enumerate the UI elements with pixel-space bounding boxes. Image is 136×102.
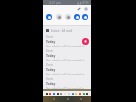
staticText: Today <box>46 54 56 58</box>
button[interactable]: Home <box>64 96 71 102</box>
staticText: Hey, what's up? I just wanted to check i… <box>46 87 91 89</box>
staticText: Hey, what's up? I just wanted to check i… <box>46 45 91 47</box>
button[interactable]: App <box>53 93 55 95</box>
button[interactable]: Kevin <box>43 33 91 47</box>
button[interactable]: Edit <box>76 6 82 12</box>
button[interactable]: App <box>49 93 51 95</box>
staticText: Kevin <box>46 49 54 53</box>
staticText: Kevin <box>46 35 54 39</box>
button[interactable]: Video <box>65 14 71 20</box>
button[interactable]: App <box>46 93 48 95</box>
button[interactable]: App <box>79 93 81 95</box>
button[interactable]: Message <box>74 14 80 20</box>
staticText: Kevin <box>46 77 54 81</box>
button[interactable]: App <box>72 93 74 95</box>
staticText: Today <box>46 82 56 86</box>
button[interactable]: Kevin <box>43 47 91 61</box>
staticText: Hey, what's up? I just wanted to check i… <box>46 73 91 75</box>
staticText: Hey, what's up? I just wanted to check i… <box>46 59 91 61</box>
staticText: ▲ ▮ 87% <box>77 1 89 5</box>
button[interactable]: App <box>75 93 77 95</box>
button[interactable]: Back <box>50 96 57 102</box>
button[interactable]: Recents <box>77 96 84 102</box>
staticText: Inbox · All mail <box>51 29 73 33</box>
button[interactable]: App <box>60 93 62 95</box>
staticText: Today <box>46 40 56 44</box>
button[interactable]: Settings <box>83 6 89 12</box>
button[interactable]: Inbox · All mail <box>43 26 91 33</box>
button[interactable]: Mic <box>56 14 62 20</box>
staticText: Kevin <box>46 63 54 67</box>
button[interactable]: Compose <box>82 38 89 45</box>
button[interactable]: Call <box>46 14 52 20</box>
button[interactable]: Kevin <box>43 61 91 75</box>
staticText: 4:21 pm <box>49 1 62 5</box>
button[interactable]: App <box>83 93 85 95</box>
button[interactable]: App <box>57 93 59 95</box>
button[interactable]: Kevin <box>43 75 91 89</box>
button[interactable]: More <box>82 14 88 20</box>
staticText: Today <box>46 68 56 72</box>
button[interactable]: App <box>86 93 88 95</box>
